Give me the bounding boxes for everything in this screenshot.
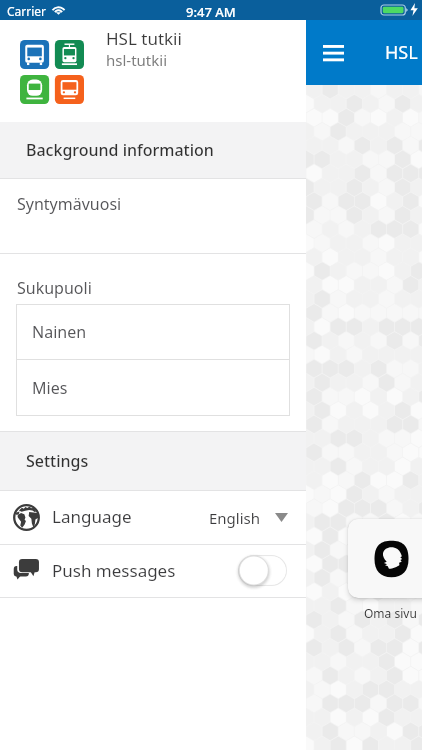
button[interactable]: Push messages (0, 545, 306, 597)
button[interactable]: Syntymävuosi (0, 179, 306, 253)
staticText: Oma sivu (364, 605, 417, 621)
button[interactable]: Language (0, 491, 306, 544)
button[interactable]: Push messages toggle (238, 555, 287, 586)
button[interactable]: Nainen (16, 304, 290, 359)
staticText: 9:47 AM (186, 3, 236, 21)
staticText: Push messages (52, 559, 176, 582)
staticText: Mies (32, 377, 68, 399)
staticText: English (209, 508, 261, 528)
staticText: Nainen (32, 321, 87, 343)
staticText: Carrier (7, 3, 47, 19)
staticText: Sukupuoli (17, 277, 92, 299)
button[interactable] (348, 519, 422, 598)
staticText: Background information (26, 139, 214, 161)
staticText: HSL (385, 40, 418, 65)
staticText: Settings (26, 450, 89, 472)
staticText: hsl-tutkii (106, 50, 168, 70)
staticText: Syntymävuosi (17, 193, 122, 215)
staticText: HSL tutkii (106, 27, 182, 50)
button[interactable]: Mies (16, 360, 290, 415)
staticText: Language (52, 505, 132, 528)
button[interactable]: Menu (311, 31, 355, 75)
